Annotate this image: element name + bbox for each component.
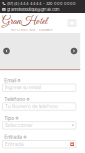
staticText: HOTEL BOUTIQUE · COLOMBIA bbox=[11, 28, 53, 31]
staticText: Email bbox=[4, 77, 16, 83]
button[interactable]: Menú bbox=[67, 19, 76, 27]
staticText: Tu Número de teléfono bbox=[5, 104, 58, 109]
button[interactable]: Seleccionar bbox=[2, 122, 76, 129]
button[interactable]: Ingrese su email bbox=[2, 84, 76, 91]
button[interactable]: Siguiente bbox=[69, 46, 78, 55]
staticText: granhotelboutique@gmail.com bbox=[7, 7, 60, 12]
staticText: Tipo bbox=[4, 115, 14, 121]
button[interactable]: Anterior bbox=[2, 46, 11, 55]
staticText: Seleccionar bbox=[5, 123, 33, 128]
staticText: Teléfono bbox=[4, 96, 25, 102]
staticText: Entrada bbox=[5, 141, 24, 147]
staticText: Entrada bbox=[4, 134, 22, 140]
button[interactable]: Tu Número de teléfono bbox=[2, 103, 76, 110]
staticText: (57) (4) 444 4444 - 320 000 0000 bbox=[7, 1, 76, 6]
staticText: Ingrese su email bbox=[5, 85, 41, 90]
button[interactable]: Entrada bbox=[2, 141, 76, 148]
staticText: GranHotel bbox=[2, 15, 47, 28]
